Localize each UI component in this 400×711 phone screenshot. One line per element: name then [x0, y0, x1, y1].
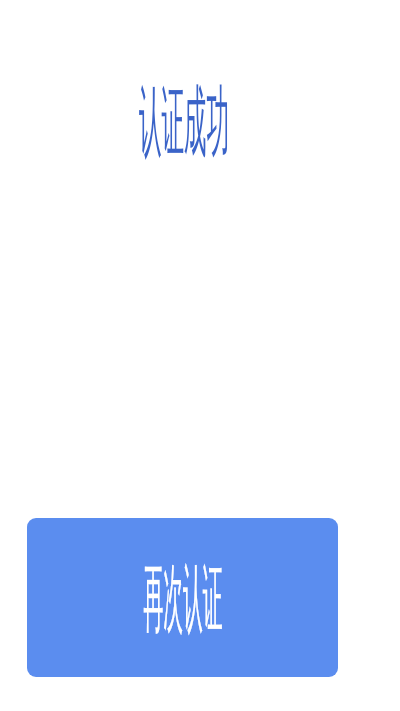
- staticText: 再次认证: [143, 551, 223, 644]
- staticText: 认证成功: [82, 74, 286, 171]
- button[interactable]: 再次认证: [27, 518, 338, 677]
